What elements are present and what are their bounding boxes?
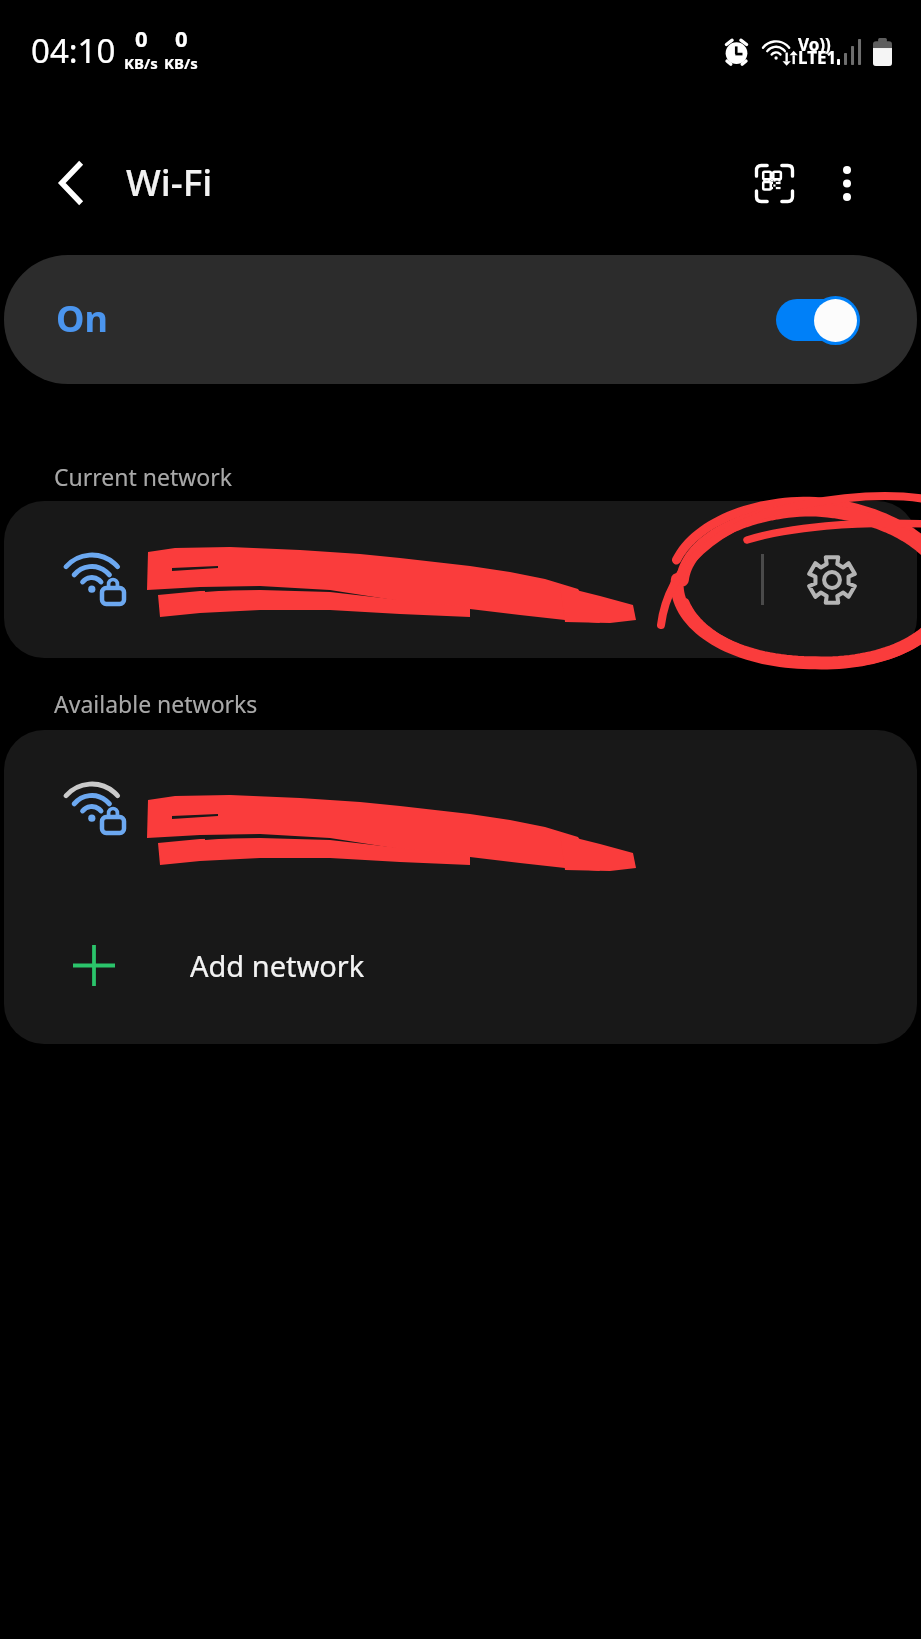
button[interactable] [4, 730, 917, 887]
button[interactable]: Navigate up [25, 138, 115, 228]
button[interactable]: Add network [4, 887, 917, 1044]
staticText: Vo)) [798, 33, 834, 56]
button[interactable]: Network settings [764, 501, 917, 658]
staticText: Current network [54, 461, 233, 492]
button[interactable]: Scan QR code [730, 139, 818, 227]
staticText: 0 [135, 23, 148, 53]
button[interactable]: On [4, 255, 917, 384]
staticText: Wi-Fi [126, 156, 213, 206]
button[interactable] [4, 501, 761, 658]
staticText: 0 [175, 23, 188, 53]
staticText: KB/s [164, 53, 198, 73]
staticText: Add network [190, 946, 365, 985]
staticText: On [56, 294, 108, 343]
staticText: KB/s [124, 53, 158, 73]
button[interactable]: More options [818, 154, 876, 212]
staticText: Available networks [54, 688, 258, 719]
staticText: LTE1 [798, 46, 834, 69]
staticText: 04:10 [31, 28, 116, 73]
